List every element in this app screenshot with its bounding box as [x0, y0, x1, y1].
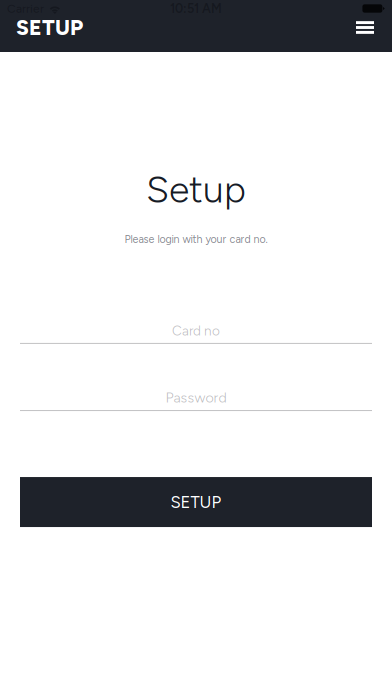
staticText: Setup: [146, 167, 246, 212]
staticText: 10:51 AM: [170, 1, 222, 16]
staticText: Password: [165, 389, 226, 406]
staticText: Please login with your card no.: [124, 233, 267, 246]
staticText: SETUP: [170, 492, 221, 512]
staticText: Card no: [172, 323, 220, 339]
button[interactable]: Menu: [351, 16, 379, 39]
button[interactable]: SETUP: [20, 477, 372, 527]
staticText: SETUP: [16, 15, 83, 40]
